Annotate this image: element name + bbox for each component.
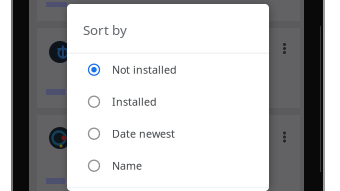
staticText: Not installed <box>112 63 177 77</box>
staticText: Sort by <box>83 21 127 39</box>
button[interactable]: Not installed <box>67 54 269 86</box>
button[interactable]: Date newest <box>67 118 269 150</box>
button[interactable]: Installed <box>67 86 269 118</box>
staticText: Date newest <box>112 127 175 141</box>
button[interactable]: Name <box>67 150 269 182</box>
staticText: Name <box>112 159 142 173</box>
staticText: Installed <box>112 95 157 109</box>
